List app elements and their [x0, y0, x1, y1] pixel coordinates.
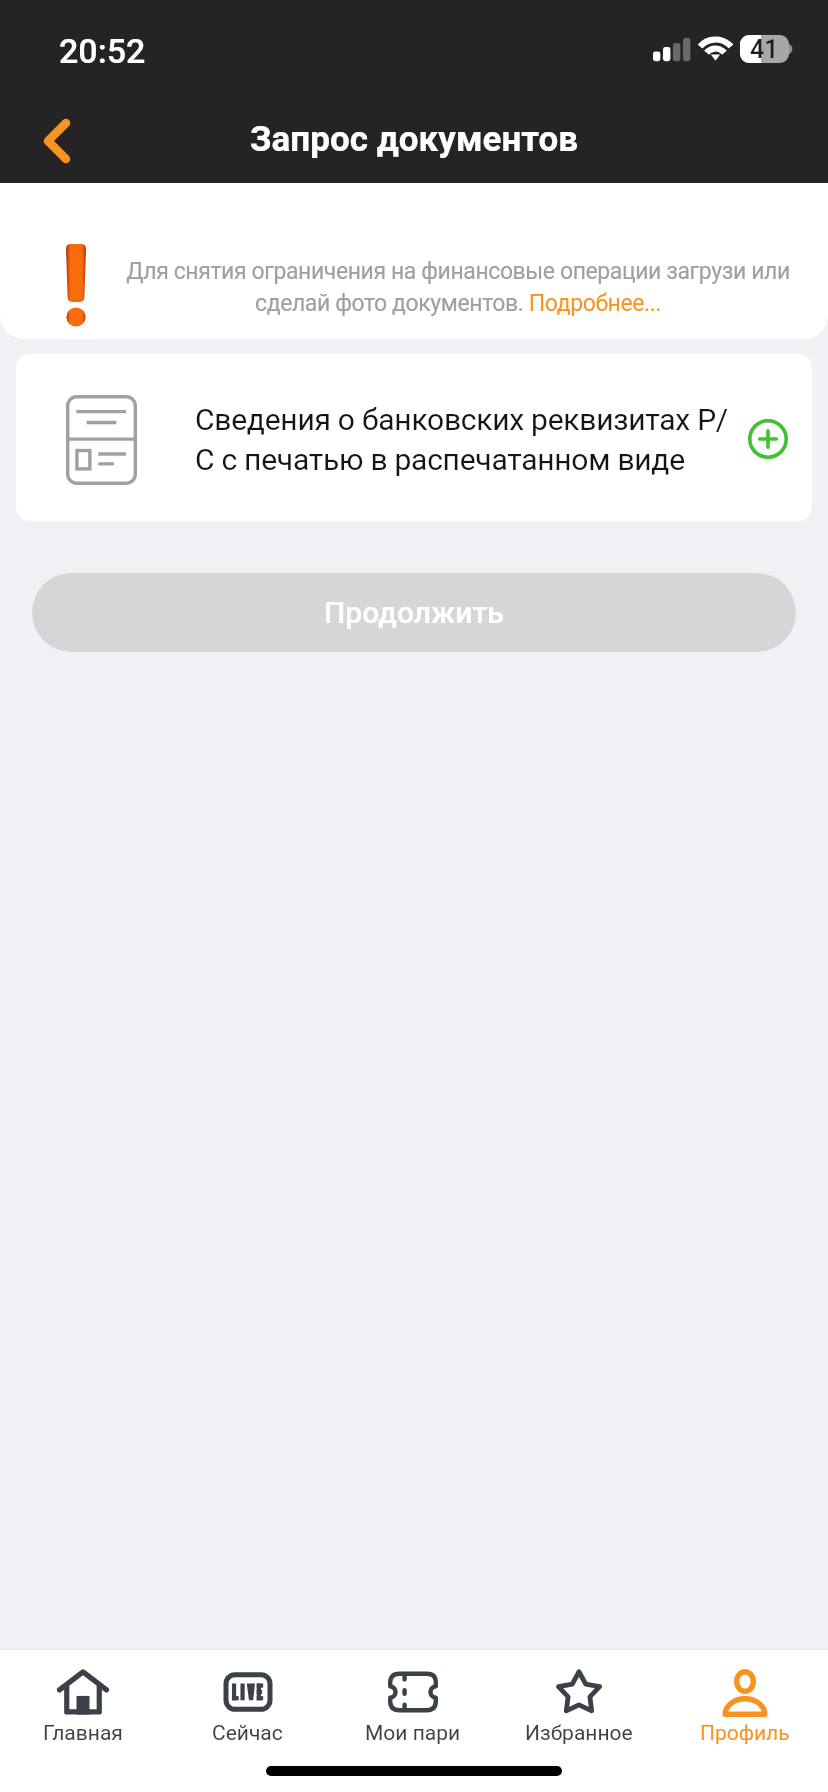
staticText: Главная — [43, 1721, 123, 1746]
button[interactable]: Сведения о банковских реквизитах Р/С с п… — [16, 354, 812, 521]
staticText: Продолжить — [324, 595, 504, 630]
button[interactable]: Back — [21, 105, 93, 177]
button[interactable]: Профиль — [662, 1669, 828, 1746]
button[interactable]: Продолжить — [32, 573, 796, 652]
staticText: Сведения о банковских реквизитах Р/С с п… — [195, 402, 740, 478]
staticText: Запрос документов — [250, 119, 579, 160]
button[interactable]: Add document — [738, 409, 798, 469]
button[interactable]: Для снятия ограничения на финансовые опе… — [0, 183, 828, 339]
staticText: 41 — [750, 35, 779, 63]
staticText: Профиль — [700, 1721, 790, 1746]
staticText: Сейчас — [212, 1721, 283, 1746]
staticText: 20:52 — [59, 31, 146, 71]
staticText: Избранное — [525, 1721, 633, 1746]
button[interactable]: Главная — [0, 1669, 165, 1746]
staticText: Мои пари — [365, 1721, 461, 1746]
button[interactable]: Избранное — [496, 1669, 662, 1746]
button[interactable]: Мои пари — [330, 1669, 496, 1746]
button[interactable]: Сейчас — [165, 1669, 330, 1746]
staticText: Для снятия ограничения на финансовые опе… — [113, 258, 803, 316]
